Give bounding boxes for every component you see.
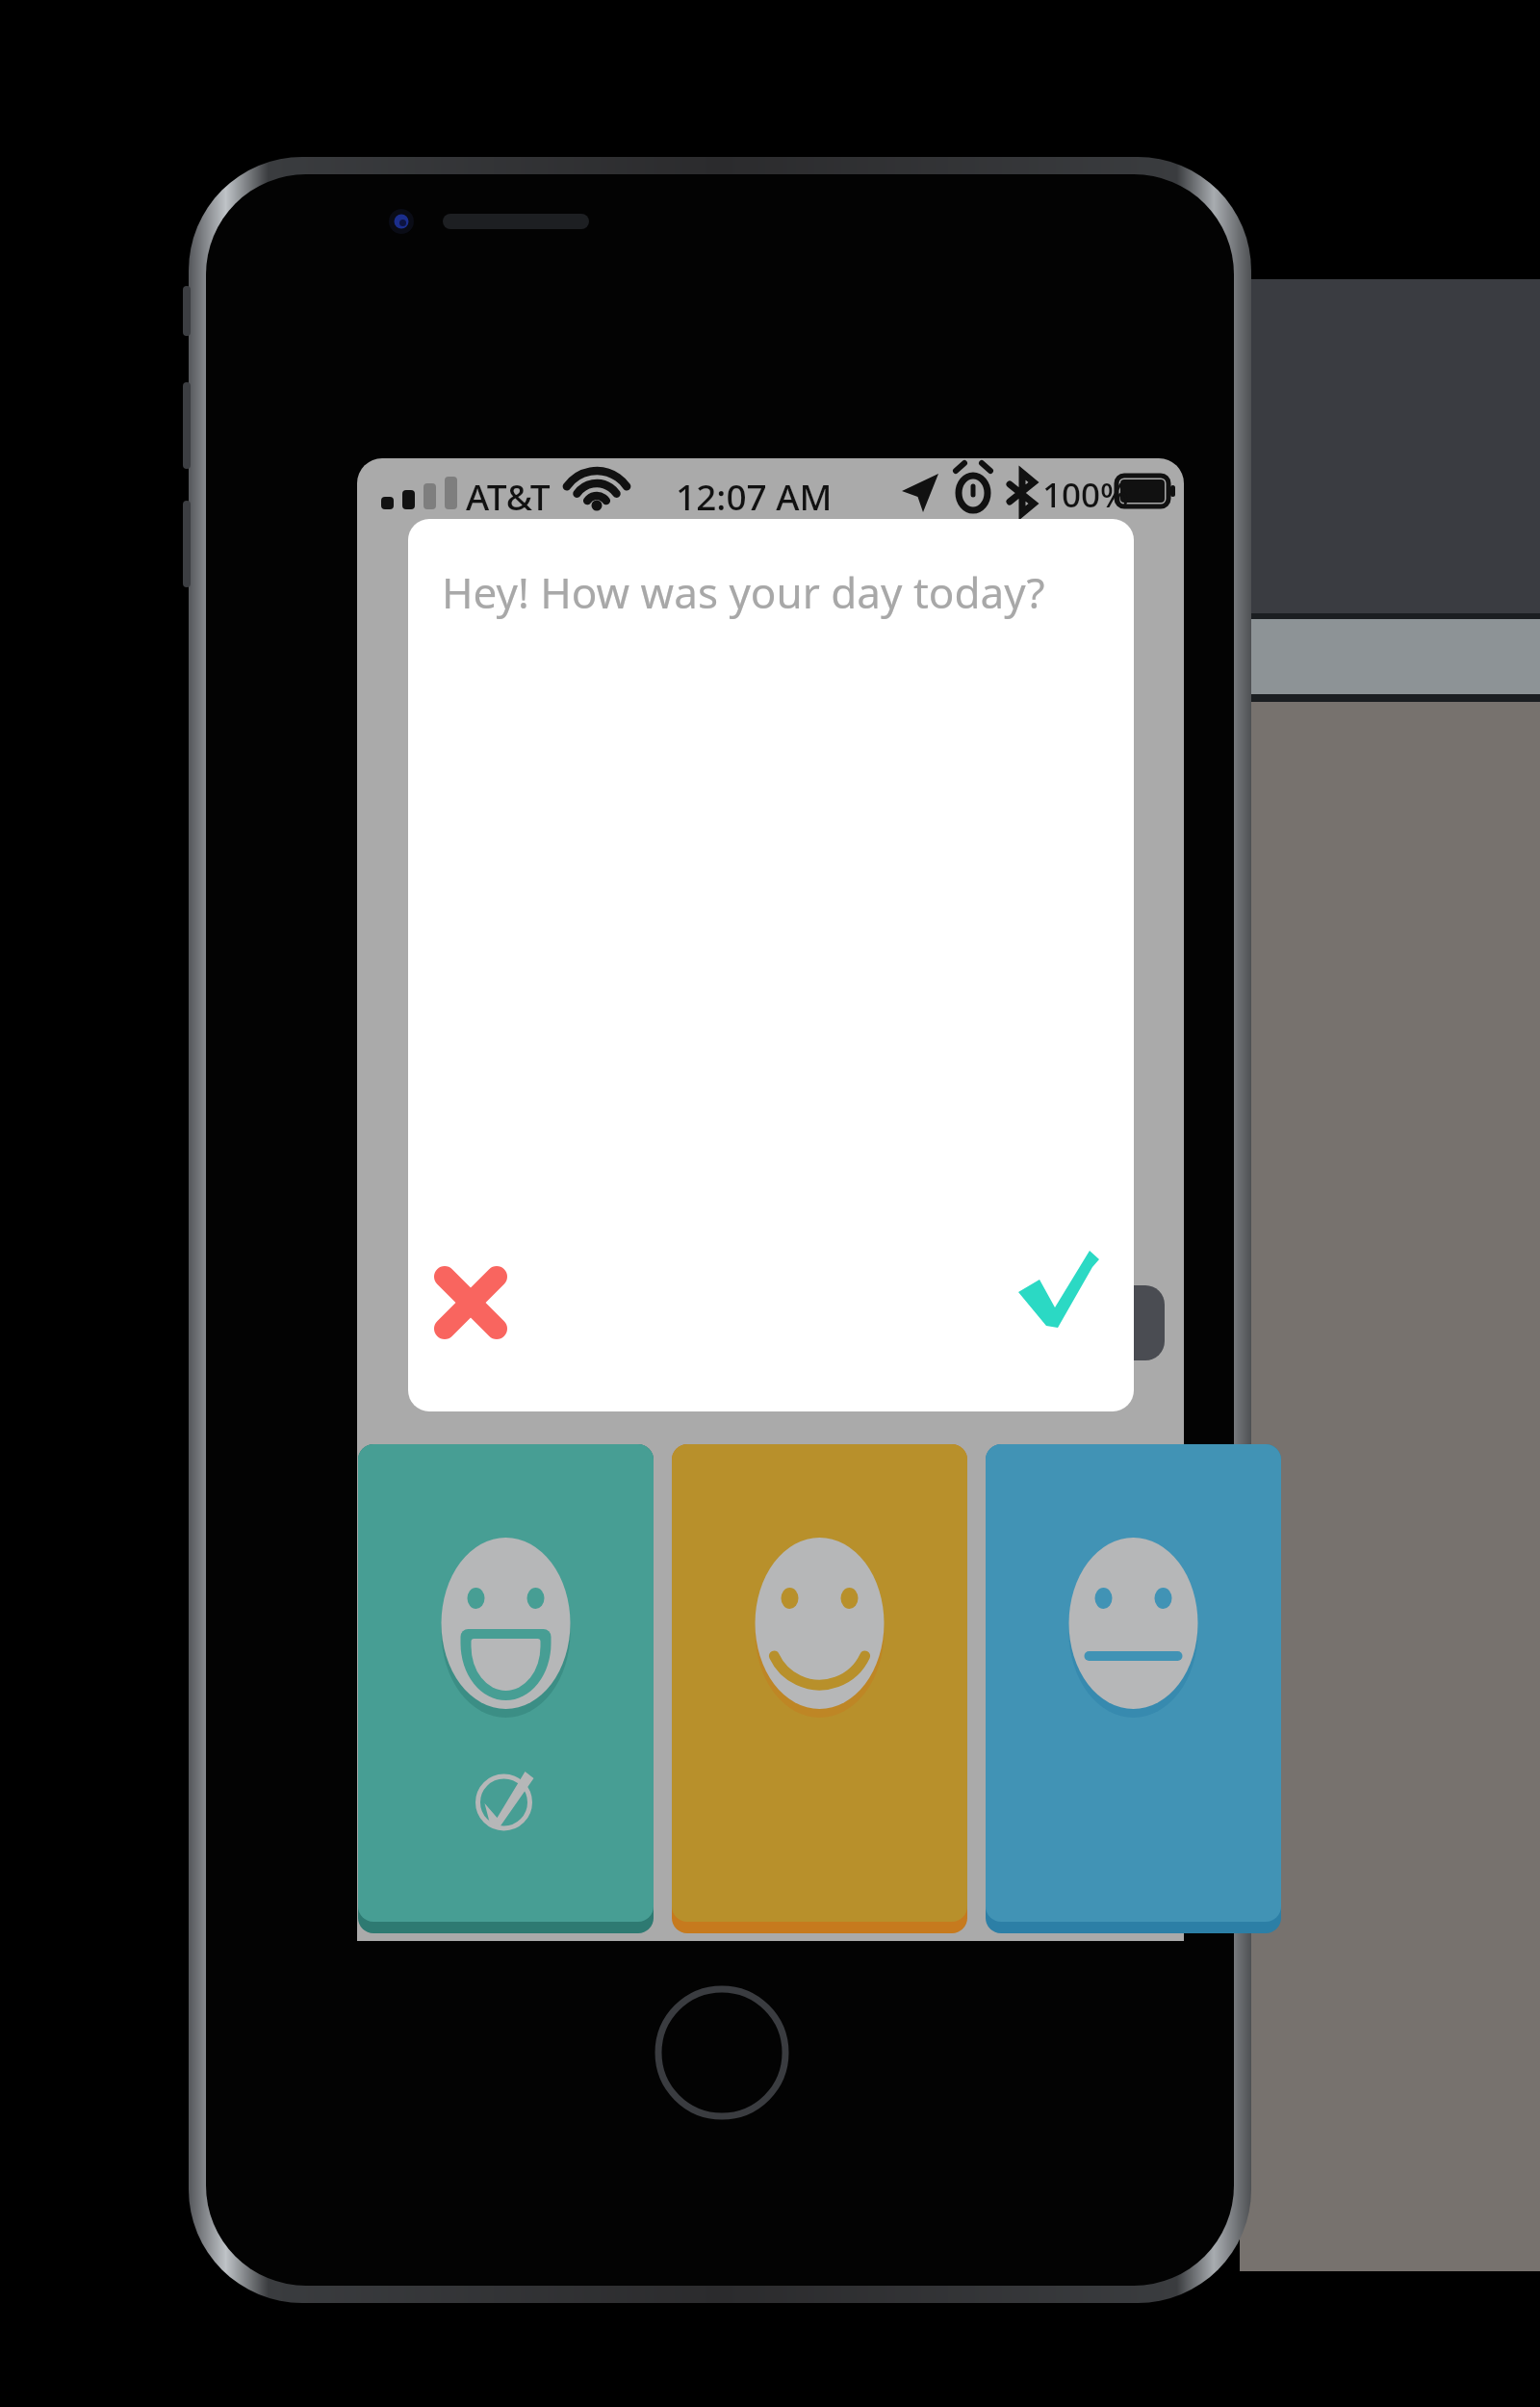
button[interactable] (408, 519, 1134, 1231)
button[interactable]: Neutral mood (986, 1444, 1281, 1933)
button[interactable]: Great mood, selected (358, 1444, 654, 1933)
staticText: AT&T (466, 472, 551, 520)
staticText: Hey! How was your day today? (442, 563, 1045, 621)
button[interactable]: Good mood (672, 1444, 967, 1933)
button[interactable]: Save entry (1007, 1242, 1111, 1346)
staticText: 100% (1042, 472, 1129, 518)
button[interactable]: Discard entry (419, 1251, 523, 1355)
staticText: 12:07 AM (676, 472, 833, 520)
